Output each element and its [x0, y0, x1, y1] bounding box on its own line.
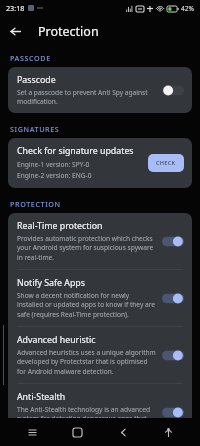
staticText: Check for signature updates — [17, 145, 134, 157]
button[interactable]: Recent apps — [19, 419, 45, 445]
staticText: 23:18 — [6, 3, 25, 13]
staticText: Engine-2 version: ENG-0 — [17, 171, 92, 180]
staticText: The Anti-Stealth technology is an advanc… — [17, 405, 156, 433]
button[interactable]: Disabled — [162, 84, 184, 97]
staticText: SIGNATURES — [10, 124, 60, 134]
staticText: CHECK — [156, 159, 176, 167]
staticText: Real-Time protection — [17, 220, 103, 232]
staticText: Advanced heuristics uses a unique algori… — [17, 348, 156, 376]
button[interactable]: Check for signature updates — [8, 138, 192, 188]
staticText: PASSCODE — [10, 53, 51, 63]
button[interactable]: Enabled — [162, 235, 184, 248]
staticText: Advanced heuristic — [17, 334, 96, 346]
staticText: Engine-1 version: SPY-0 — [17, 160, 90, 169]
button[interactable]: Home — [64, 419, 90, 445]
staticText: Show a decent notification for newly ins… — [17, 291, 156, 319]
button[interactable]: Passcode — [8, 67, 192, 113]
button[interactable]: Real-Time protection — [8, 213, 192, 269]
staticText: Passcode — [17, 74, 56, 86]
button[interactable]: CHECK — [148, 154, 184, 172]
staticText: Anti-Stealth — [17, 391, 66, 403]
button[interactable]: Anti-Stealth — [8, 384, 192, 440]
button[interactable]: Back — [0, 16, 30, 46]
button[interactable]: Notify Safe Apps — [8, 270, 192, 326]
staticText: 42% — [181, 4, 194, 13]
button[interactable]: Back — [110, 419, 136, 445]
staticText: Provides automatic protection which chec… — [17, 234, 156, 262]
button[interactable]: Enabled — [162, 406, 184, 419]
staticText: PROTECTION — [10, 199, 61, 209]
button[interactable]: Screenshot — [155, 419, 181, 445]
button[interactable]: Advanced heuristic — [8, 327, 192, 383]
button[interactable]: Enabled — [162, 349, 184, 362]
staticText: Notify Safe Apps — [17, 277, 85, 289]
button[interactable]: Enabled — [162, 292, 184, 305]
staticText: Protection — [38, 23, 99, 40]
staticText: Set a passcode to prevent Anti Spy again… — [17, 88, 156, 106]
